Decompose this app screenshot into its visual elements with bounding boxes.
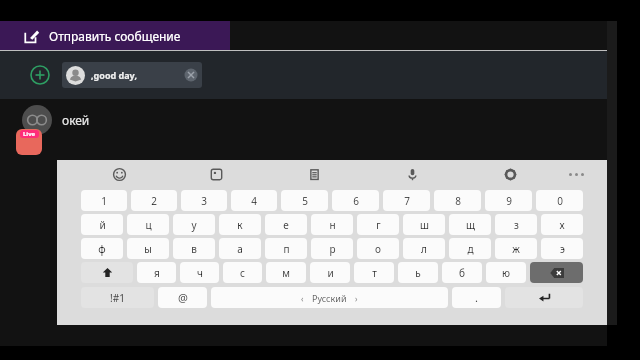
staticText: е <box>283 218 289 232</box>
button[interactable]: ‚good day‚ <box>62 62 202 88</box>
button[interactable]: л <box>403 238 445 259</box>
staticText: с <box>240 266 245 280</box>
button[interactable]: More options <box>559 160 593 188</box>
button[interactable]: 6 <box>332 190 379 211</box>
staticText: 0 <box>557 194 563 208</box>
staticText: 4 <box>251 194 257 208</box>
button[interactable]: у <box>173 214 215 235</box>
button[interactable]: ф <box>81 238 123 259</box>
staticText: д <box>467 242 474 256</box>
button[interactable]: щ <box>449 214 491 235</box>
button[interactable]: Settings <box>461 160 559 188</box>
staticText: р <box>329 242 336 256</box>
other: Compose <box>24 28 40 44</box>
staticText: о <box>375 242 381 256</box>
button[interactable]: з <box>495 214 537 235</box>
staticText: х <box>559 218 565 232</box>
button[interactable]: ь <box>398 262 438 283</box>
button[interactable]: Enter <box>505 287 583 308</box>
button[interactable]: . <box>452 287 501 308</box>
button[interactable]: ‹ <box>211 287 448 308</box>
button[interactable]: 5 <box>281 190 328 211</box>
button[interactable]: ю <box>486 262 526 283</box>
button[interactable]: б <box>442 262 482 283</box>
button[interactable]: Clipboard <box>265 160 363 188</box>
button[interactable]: Compose <box>0 21 230 50</box>
button[interactable]: о <box>357 238 399 259</box>
button[interactable]: Add recipient <box>30 65 50 85</box>
staticText: й <box>99 218 106 232</box>
button[interactable]: ч <box>180 262 219 283</box>
staticText: в <box>191 242 197 256</box>
button[interactable]: д <box>449 238 491 259</box>
staticText: 7 <box>404 194 410 208</box>
staticText: п <box>283 242 290 256</box>
button[interactable]: й <box>81 214 123 235</box>
button[interactable]: ж <box>495 238 537 259</box>
staticText: 9 <box>506 194 512 208</box>
staticText: ц <box>145 218 152 232</box>
staticText: 8 <box>455 194 461 208</box>
staticText: ‹ <box>301 293 304 304</box>
staticText: ь <box>415 266 421 280</box>
staticText: а <box>237 242 243 256</box>
staticText: у <box>191 218 197 232</box>
button[interactable]: Shift <box>81 262 133 283</box>
staticText: 6 <box>353 194 359 208</box>
button[interactable]: т <box>354 262 394 283</box>
button[interactable]: е <box>265 214 307 235</box>
button[interactable]: 0 <box>536 190 583 211</box>
staticText: г <box>376 218 381 232</box>
staticText: ‚good day‚ <box>91 69 137 81</box>
button[interactable]: Voice input <box>363 160 461 188</box>
staticText: ю <box>502 266 510 280</box>
button[interactable]: Live <box>16 129 42 155</box>
button[interactable]: г <box>357 214 399 235</box>
staticText: я <box>154 266 160 280</box>
staticText: Отправить сообщение <box>49 28 181 44</box>
button[interactable]: 9 <box>485 190 532 211</box>
button[interactable]: Stickers <box>168 160 265 188</box>
button[interactable]: 8 <box>434 190 481 211</box>
button[interactable]: а <box>219 238 261 259</box>
staticText: к <box>237 218 243 232</box>
button[interactable]: р <box>311 238 353 259</box>
button[interactable]: Remove recipient <box>184 68 198 82</box>
staticText: л <box>421 242 427 256</box>
staticText: › <box>355 293 358 304</box>
staticText: 1 <box>101 194 107 208</box>
button[interactable]: 2 <box>131 190 177 211</box>
button[interactable]: !#1 <box>81 287 154 308</box>
button[interactable]: я <box>137 262 176 283</box>
button[interactable]: 4 <box>231 190 277 211</box>
button[interactable]: х <box>541 214 583 235</box>
staticText: щ <box>466 218 475 232</box>
button[interactable]: Emoji <box>71 160 168 188</box>
staticText: Live <box>23 130 36 138</box>
button[interactable]: э <box>541 238 583 259</box>
button[interactable]: 7 <box>383 190 430 211</box>
button[interactable]: Backspace <box>530 262 583 283</box>
button[interactable]: @ <box>158 287 207 308</box>
button[interactable]: и <box>310 262 350 283</box>
button[interactable]: н <box>311 214 353 235</box>
staticText: и <box>327 266 334 280</box>
staticText: м <box>282 266 290 280</box>
staticText: @ <box>178 290 188 305</box>
button[interactable]: с <box>223 262 262 283</box>
staticText: 5 <box>302 194 308 208</box>
staticText: б <box>459 266 465 280</box>
button[interactable]: к <box>219 214 261 235</box>
button[interactable]: в <box>173 238 215 259</box>
button[interactable]: ш <box>403 214 445 235</box>
staticText: э <box>560 242 565 256</box>
button[interactable]: 1 <box>81 190 127 211</box>
button[interactable]: 3 <box>181 190 227 211</box>
button[interactable]: ц <box>127 214 169 235</box>
staticText: !#1 <box>110 291 125 305</box>
button[interactable]: м <box>266 262 306 283</box>
staticText: . <box>475 290 478 305</box>
staticText: 2 <box>151 194 157 208</box>
button[interactable]: ы <box>127 238 169 259</box>
button[interactable]: п <box>265 238 307 259</box>
